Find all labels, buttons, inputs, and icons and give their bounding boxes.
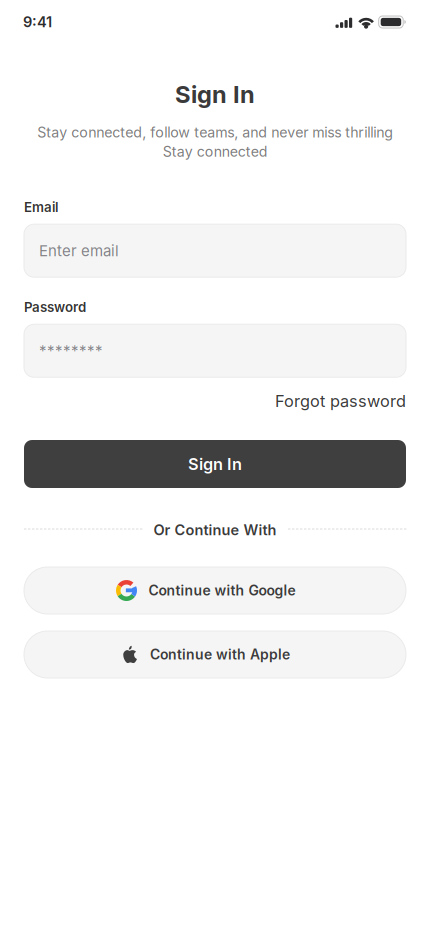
staticText: Enter email	[39, 242, 119, 260]
staticText: Or Continue With	[153, 521, 276, 539]
staticText: Sign In	[175, 80, 255, 109]
button[interactable]: Email	[24, 224, 406, 277]
staticText: Sign In	[188, 454, 242, 474]
button[interactable]: Forgot password	[24, 391, 406, 411]
staticText: Continue with Apple	[150, 646, 290, 663]
staticText: Password	[24, 299, 86, 315]
staticText: ********	[39, 342, 103, 360]
staticText: Stay connected, follow teams, and never …	[37, 124, 393, 160]
button[interactable]: Continue with Apple	[24, 631, 406, 678]
staticText: Forgot password	[275, 391, 406, 411]
staticText: Email	[24, 199, 58, 215]
button[interactable]: Password	[24, 324, 406, 377]
button[interactable]: Sign In	[24, 440, 406, 488]
staticText: Continue with Google	[148, 582, 295, 599]
staticText: 9:41	[23, 13, 52, 31]
button[interactable]: Continue with Google	[24, 567, 406, 614]
